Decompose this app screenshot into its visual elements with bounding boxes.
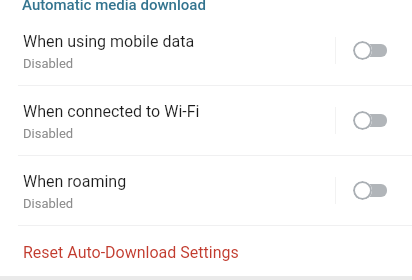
button[interactable]: When connected to Wi-Fi [0, 85, 412, 155]
staticText: Automatic media download [22, 0, 206, 14]
staticText: When using mobile data [23, 32, 195, 51]
staticText: Disabled [23, 56, 74, 71]
button[interactable] [353, 180, 387, 200]
button[interactable] [353, 110, 387, 130]
button[interactable]: When using mobile data [0, 15, 412, 85]
button[interactable] [353, 40, 387, 60]
staticText: Disabled [23, 196, 74, 211]
staticText: When connected to Wi-Fi [23, 102, 200, 121]
staticText: When roaming [23, 172, 127, 191]
button[interactable]: Reset Auto-Download Settings [0, 225, 412, 276]
staticText: Disabled [23, 126, 74, 141]
staticText: Reset Auto-Download Settings [23, 243, 239, 262]
button[interactable]: When roaming [0, 155, 412, 225]
